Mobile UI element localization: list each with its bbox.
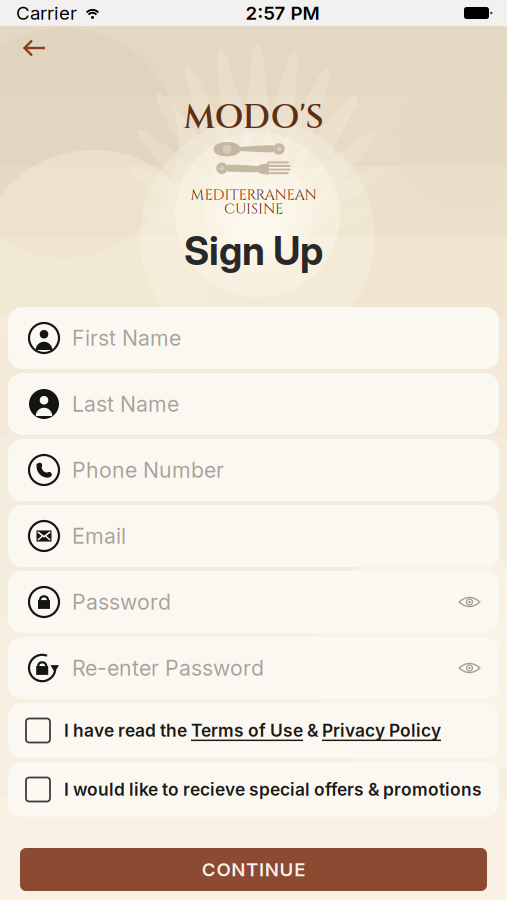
staticText: Carrier: [16, 2, 77, 24]
button[interactable]: Phone Number: [8, 439, 499, 501]
staticText: 2:57 PM: [245, 2, 319, 24]
staticText: Password: [72, 589, 171, 615]
staticText: I would like to recieve special offers &…: [64, 779, 482, 800]
button[interactable]: I would like to recieve special offers &…: [8, 762, 499, 817]
button[interactable]: Back: [0, 26, 62, 70]
button[interactable]: CONTINUE: [20, 848, 487, 891]
staticText: Phone Number: [72, 457, 224, 483]
button[interactable]: Re-enter Password: [8, 637, 499, 699]
staticText: Sign Up: [184, 228, 323, 274]
staticText: Email: [72, 523, 126, 549]
staticText: Last Name: [72, 391, 179, 417]
staticText: I have read the Terms of Use & Privacy P…: [64, 720, 441, 741]
button[interactable]: Email: [8, 505, 499, 567]
button[interactable]: Password: [8, 571, 499, 633]
button[interactable]: First Name: [8, 307, 499, 369]
button[interactable]: Last Name: [8, 373, 499, 435]
button[interactable]: I have read the Terms of Use & Privacy P…: [8, 703, 499, 758]
staticText: First Name: [72, 325, 181, 351]
staticText: CONTINUE: [202, 858, 305, 881]
staticText: MODO'S: [183, 95, 323, 140]
staticText: Re-enter Password: [72, 655, 264, 681]
staticText: CUISINE: [224, 199, 283, 219]
staticText: MEDITERRANEAN: [190, 185, 316, 205]
